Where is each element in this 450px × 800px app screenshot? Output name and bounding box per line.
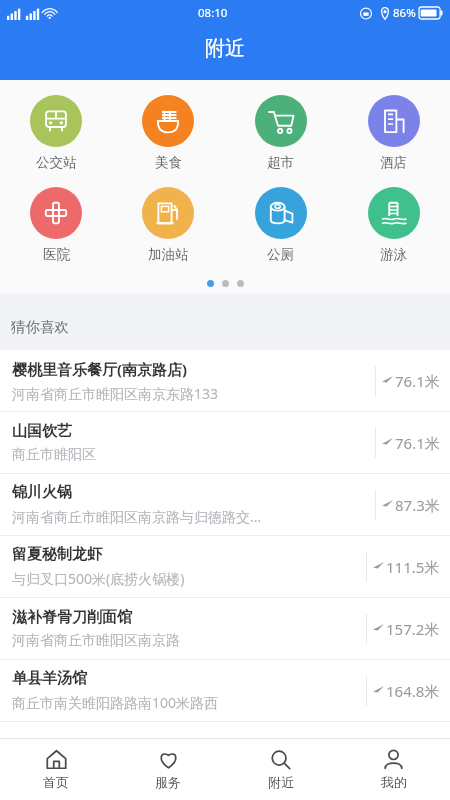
staticText: 首页 bbox=[43, 774, 69, 790]
staticText: 美食 bbox=[155, 154, 182, 171]
staticText: 76.1米 bbox=[395, 371, 440, 391]
staticText: 医院 bbox=[43, 246, 70, 263]
button[interactable]: 单县羊汤馆 bbox=[0, 660, 450, 722]
button[interactable]: 山国饮艺 bbox=[0, 412, 450, 474]
staticText: 游泳 bbox=[380, 246, 407, 263]
staticText: 157.2米 bbox=[386, 619, 440, 639]
button[interactable]: 超市 bbox=[224, 94, 337, 172]
staticText: 加油站 bbox=[148, 246, 189, 263]
staticText: 樱桃里音乐餐厅(南京路店) bbox=[12, 359, 188, 379]
button[interactable]: 美食 bbox=[112, 94, 224, 172]
staticText: 87.3米 bbox=[395, 495, 440, 515]
staticText: 附近 bbox=[205, 36, 245, 61]
staticText: 滋补脊骨刀削面馆 bbox=[12, 608, 132, 627]
button[interactable]: 附近 bbox=[224, 738, 337, 800]
staticText: 单县羊汤馆 bbox=[12, 669, 87, 688]
staticText: 河南省商丘市睢阳区南京东路133 bbox=[12, 384, 219, 403]
button[interactable]: 樱桃里音乐餐厅(南京路店) bbox=[0, 350, 450, 412]
staticText: 公交站 bbox=[36, 154, 77, 171]
button[interactable]: 医院 bbox=[0, 186, 112, 264]
staticText: 76.1米 bbox=[395, 433, 440, 453]
staticText: 猜你喜欢 bbox=[11, 318, 69, 336]
button[interactable]: 加油站 bbox=[112, 186, 224, 264]
staticText: 商丘市睢阳区 bbox=[12, 446, 96, 464]
staticText: 超市 bbox=[267, 154, 294, 171]
staticText: 酒店 bbox=[380, 154, 407, 171]
button[interactable]: 首页 bbox=[0, 738, 112, 800]
staticText: 与归叉口500米(底捞火锅楼) bbox=[12, 569, 185, 588]
button[interactable]: 酒店 bbox=[337, 94, 450, 172]
button[interactable]: 游泳 bbox=[337, 186, 450, 264]
staticText: 留夏秘制龙虾 bbox=[12, 545, 102, 564]
button[interactable]: 留夏秘制龙虾 bbox=[0, 536, 450, 598]
staticText: 附近 bbox=[268, 774, 294, 790]
staticText: 服务 bbox=[155, 774, 181, 790]
staticText: 商丘市南关睢阳路路南100米路西 bbox=[12, 693, 219, 712]
button[interactable]: 我的 bbox=[337, 738, 450, 800]
staticText: 86% bbox=[393, 5, 416, 21]
staticText: 164.8米 bbox=[386, 681, 440, 701]
staticText: 我的 bbox=[381, 774, 407, 790]
staticText: 河南省商丘市睢阳区南京路与归德路交… bbox=[12, 507, 262, 526]
staticText: 锦川火锅 bbox=[12, 483, 72, 502]
staticText: 08:10 bbox=[198, 5, 228, 21]
button[interactable]: 公厕 bbox=[224, 186, 337, 264]
staticText: 公厕 bbox=[267, 246, 294, 263]
staticText: 111.5米 bbox=[386, 557, 440, 577]
button[interactable]: 公交站 bbox=[0, 94, 112, 172]
staticText: 山国饮艺 bbox=[12, 422, 72, 441]
button[interactable]: 服务 bbox=[112, 738, 224, 800]
button[interactable]: 滋补脊骨刀削面馆 bbox=[0, 598, 450, 660]
button[interactable]: 锦川火锅 bbox=[0, 474, 450, 536]
staticText: 河南省商丘市睢阳区南京路 bbox=[12, 632, 180, 650]
